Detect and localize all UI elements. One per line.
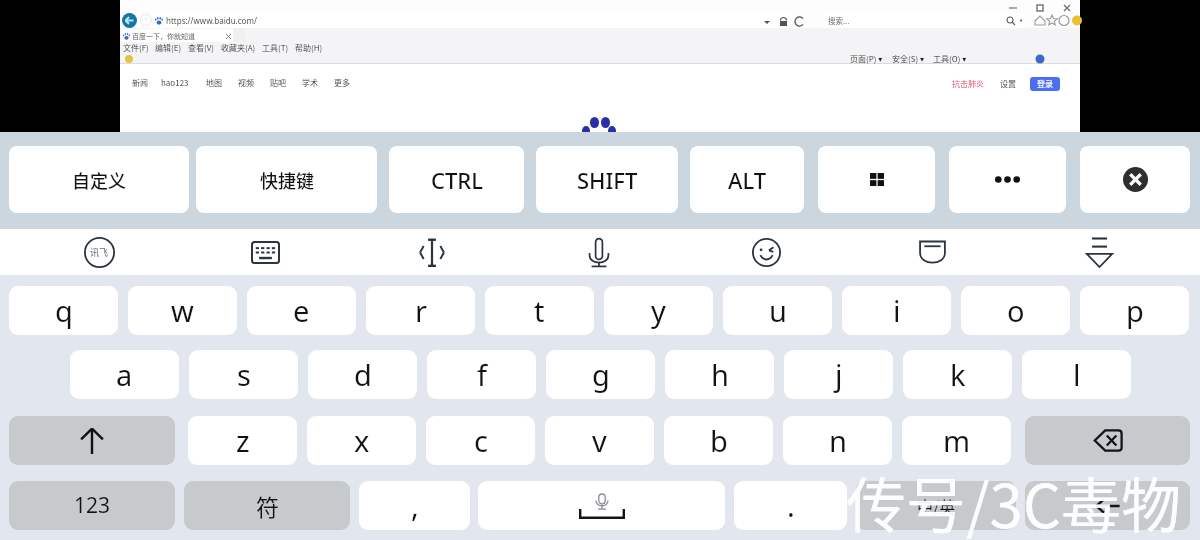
button[interactable]: Windows key — [818, 146, 935, 213]
button[interactable]: 百度一下，你就知道 — [121, 29, 239, 42]
button[interactable]: 自定义 — [9, 146, 189, 213]
button[interactable]: , — [359, 481, 470, 530]
button[interactable]: 视频 — [238, 77, 254, 89]
button[interactable]: 新闻 — [132, 77, 148, 89]
button[interactable]: e — [247, 286, 356, 335]
button[interactable]: z — [188, 416, 297, 465]
staticText: v — [592, 421, 607, 460]
button[interactable]: k — [903, 350, 1012, 399]
button[interactable]: g — [546, 350, 655, 399]
button[interactable]: v — [545, 416, 654, 465]
button[interactable]: More options — [949, 146, 1066, 213]
button[interactable]: 页面(P) ▾ — [850, 53, 883, 64]
button[interactable]: Space — [478, 481, 725, 530]
button[interactable]: s — [189, 350, 298, 399]
button[interactable]: Keyboard layout — [225, 229, 305, 275]
staticText: h — [711, 355, 729, 394]
button[interactable]: a — [70, 350, 179, 399]
button[interactable]: 帮助(H) — [295, 42, 323, 53]
staticText: 自定义 — [72, 167, 126, 193]
button[interactable]: Close tab — [225, 33, 232, 40]
button[interactable]: Close keyboard — [1080, 146, 1190, 213]
button[interactable]: x — [307, 416, 416, 465]
button[interactable]: https://www.baidu.com/ — [153, 13, 793, 28]
button[interactable]: m — [902, 416, 1011, 465]
button[interactable]: 快捷键 — [196, 146, 377, 213]
button[interactable]: 搜索... — [824, 13, 1025, 28]
staticText: l — [1073, 355, 1081, 394]
button[interactable]: 贴吧 — [270, 77, 286, 89]
staticText: b — [710, 421, 728, 460]
button[interactable]: j — [784, 350, 893, 399]
staticText: https://www.baidu.com/ — [166, 15, 257, 26]
staticText: j — [835, 355, 843, 394]
button[interactable]: 符 — [184, 481, 350, 530]
button[interactable]: f — [427, 350, 536, 399]
staticText: ALT — [728, 165, 767, 195]
button[interactable]: 工具(O) ▾ — [933, 53, 967, 64]
staticText: a — [116, 355, 133, 394]
button[interactable]: Input method — [59, 229, 139, 275]
staticText: 登录 — [1037, 78, 1053, 90]
button[interactable]: CTRL — [389, 146, 524, 213]
button[interactable]: 收藏夹(A) — [221, 42, 256, 53]
button[interactable]: Back — [122, 13, 137, 28]
button[interactable]: Cursor move — [392, 229, 472, 275]
button[interactable]: p — [1080, 286, 1189, 335]
staticText: 符 — [256, 489, 279, 522]
button[interactable]: i — [842, 286, 951, 335]
button[interactable]: 文件(F) — [123, 42, 149, 53]
button[interactable]: . — [734, 481, 847, 530]
button[interactable]: Hide keyboard — [1059, 229, 1139, 275]
button[interactable]: 安全(S) ▾ — [892, 53, 924, 64]
button[interactable]: h — [665, 350, 774, 399]
staticText: 搜索... — [828, 15, 850, 26]
button[interactable]: Enter — [1025, 481, 1190, 530]
button[interactable]: 设置 — [1000, 78, 1016, 90]
button[interactable]: hao123 — [161, 77, 189, 89]
staticText: 讯飞 — [90, 246, 109, 259]
button[interactable]: Voice input — [559, 229, 639, 275]
button[interactable]: 抗击肺炎 — [952, 78, 984, 90]
button[interactable]: q — [9, 286, 118, 335]
button[interactable]: 地图 — [206, 77, 222, 89]
staticText: 传号/3C毒物 — [846, 458, 1182, 540]
staticText: c — [474, 421, 488, 460]
button[interactable]: 更多 — [334, 77, 350, 89]
button[interactable]: l — [1022, 350, 1131, 399]
staticText: s — [237, 355, 251, 394]
button[interactable]: 123 — [9, 481, 175, 530]
staticText: r — [415, 291, 427, 330]
button[interactable]: c — [426, 416, 535, 465]
button[interactable]: t — [485, 286, 594, 335]
staticText: CTRL — [431, 165, 483, 195]
staticText: . — [787, 486, 795, 525]
button[interactable]: Shift — [9, 416, 175, 465]
button[interactable]: o — [961, 286, 1070, 335]
staticText: e — [293, 291, 310, 330]
button[interactable]: Switch language — [856, 481, 1016, 530]
button[interactable]: Backspace — [1025, 416, 1190, 465]
button[interactable]: SHIFT — [536, 146, 678, 213]
staticText: d — [354, 355, 372, 394]
button[interactable]: w — [128, 286, 237, 335]
button[interactable]: b — [664, 416, 773, 465]
staticText: w — [171, 291, 194, 330]
button[interactable]: Emoji — [726, 229, 806, 275]
button[interactable]: y — [604, 286, 713, 335]
button[interactable]: 工具(T) — [262, 42, 289, 53]
button[interactable]: d — [308, 350, 417, 399]
button[interactable]: 编辑(E) — [155, 42, 182, 53]
staticText: z — [236, 421, 250, 460]
staticText: 中/英 — [917, 494, 956, 517]
button[interactable]: u — [723, 286, 832, 335]
button[interactable]: n — [783, 416, 892, 465]
staticText: p — [1126, 291, 1144, 330]
button[interactable]: r — [366, 286, 475, 335]
button[interactable]: ALT — [690, 146, 804, 213]
button[interactable]: Clipboard — [892, 229, 972, 275]
button[interactable]: 登录 — [1030, 77, 1060, 91]
button[interactable]: 查看(V) — [188, 42, 215, 53]
button[interactable]: 学术 — [302, 77, 318, 89]
